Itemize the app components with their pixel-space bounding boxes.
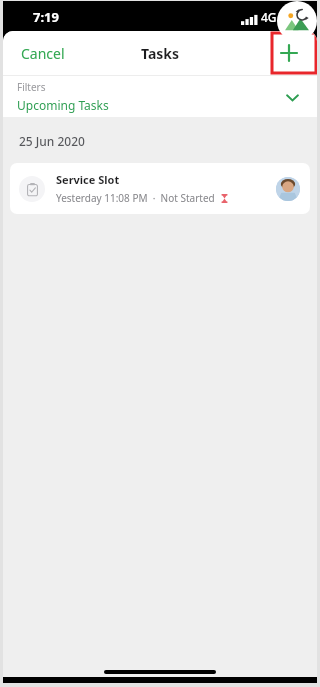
staticText: 4G [261,9,277,25]
staticText: Tasks [141,44,180,63]
staticText: Upcoming Tasks [17,97,109,113]
other: Screenshot sync [277,1,317,41]
staticText: Service Slot [56,172,120,187]
staticText: 7:19 [33,8,59,26]
button[interactable]: Filters [3,76,317,117]
staticText: 25 Jun 2020 [19,133,85,149]
button[interactable]: Cancel [3,34,83,73]
button[interactable]: Service Slot [10,163,310,214]
button[interactable]: Add task [275,39,303,67]
staticText: Cancel [21,44,65,63]
staticText: Yesterday 11:08 PM · Not Started [56,191,215,205]
other: Assignee avatar [276,177,300,201]
staticText: Filters [17,80,46,94]
